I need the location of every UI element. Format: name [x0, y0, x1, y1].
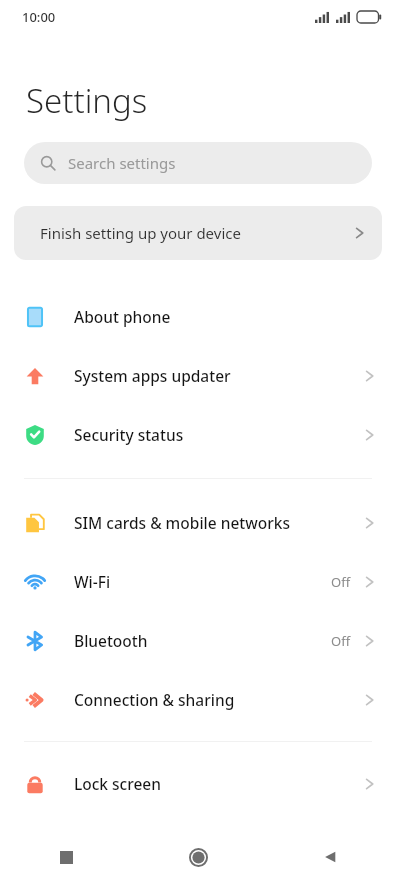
button[interactable]: Bluetooth: [0, 611, 396, 670]
staticText: Off: [331, 573, 351, 591]
button[interactable]: Back: [264, 834, 396, 880]
staticText: About phone: [74, 306, 171, 327]
staticText: Connection & sharing: [74, 689, 235, 710]
staticText: System apps updater: [74, 365, 231, 386]
button[interactable]: Security status: [0, 405, 396, 464]
staticText: Bluetooth: [74, 630, 148, 651]
button[interactable]: SIM cards & mobile networks: [0, 493, 396, 552]
staticText: Off: [331, 632, 351, 650]
button[interactable]: About phone: [0, 287, 396, 346]
staticText: Wi-Fi: [74, 571, 111, 592]
button[interactable]: Lock screen: [0, 754, 396, 813]
button[interactable]: Search settings: [24, 142, 372, 184]
button[interactable]: System apps updater: [0, 346, 396, 405]
staticText: Lock screen: [74, 773, 161, 794]
button[interactable]: Finish setting up your device: [14, 206, 382, 260]
button[interactable]: Connection & sharing: [0, 670, 396, 729]
staticText: Settings: [26, 78, 148, 123]
staticText: 10:00: [22, 8, 56, 26]
staticText: Finish setting up your device: [40, 223, 241, 243]
button[interactable]: Home: [132, 834, 264, 880]
button[interactable]: Recent apps: [0, 834, 132, 880]
staticText: SIM cards & mobile networks: [74, 512, 290, 533]
staticText: Search settings: [68, 153, 176, 173]
button[interactable]: Wi-Fi: [0, 552, 396, 611]
staticText: Security status: [74, 424, 184, 445]
